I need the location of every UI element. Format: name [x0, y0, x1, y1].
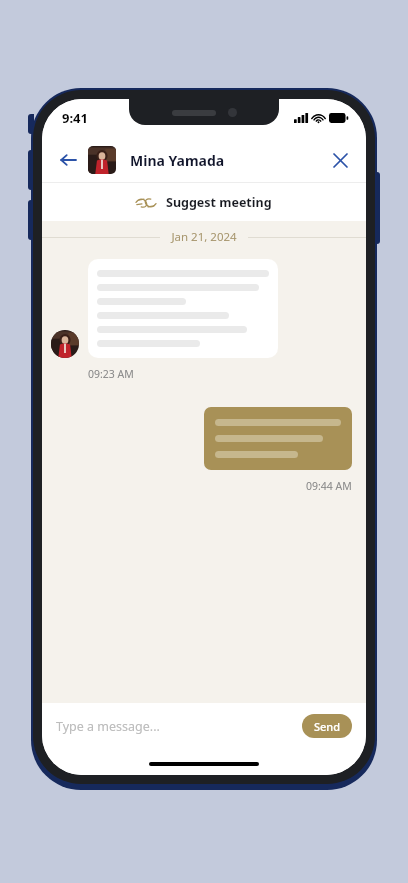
button[interactable]: Suggest meeting	[42, 183, 366, 221]
staticText: Suggest meeting	[166, 194, 272, 211]
staticText: Jan 21, 2024	[171, 229, 237, 245]
button[interactable]: Back	[54, 146, 82, 174]
staticText: Type a message...	[56, 718, 160, 735]
button[interactable]	[88, 259, 278, 358]
staticText: 09:44 AM	[306, 479, 352, 493]
button[interactable]: Close	[326, 146, 354, 174]
button[interactable]: Send	[302, 714, 352, 738]
staticText: Mina Yamada	[130, 151, 225, 170]
button[interactable]	[204, 407, 352, 470]
staticText: 9:41	[62, 109, 88, 127]
staticText: 09:23 AM	[88, 367, 134, 381]
button[interactable]: Type a message...	[56, 718, 292, 735]
staticText: Send	[314, 719, 341, 734]
button[interactable]: Contact photo	[88, 146, 116, 174]
